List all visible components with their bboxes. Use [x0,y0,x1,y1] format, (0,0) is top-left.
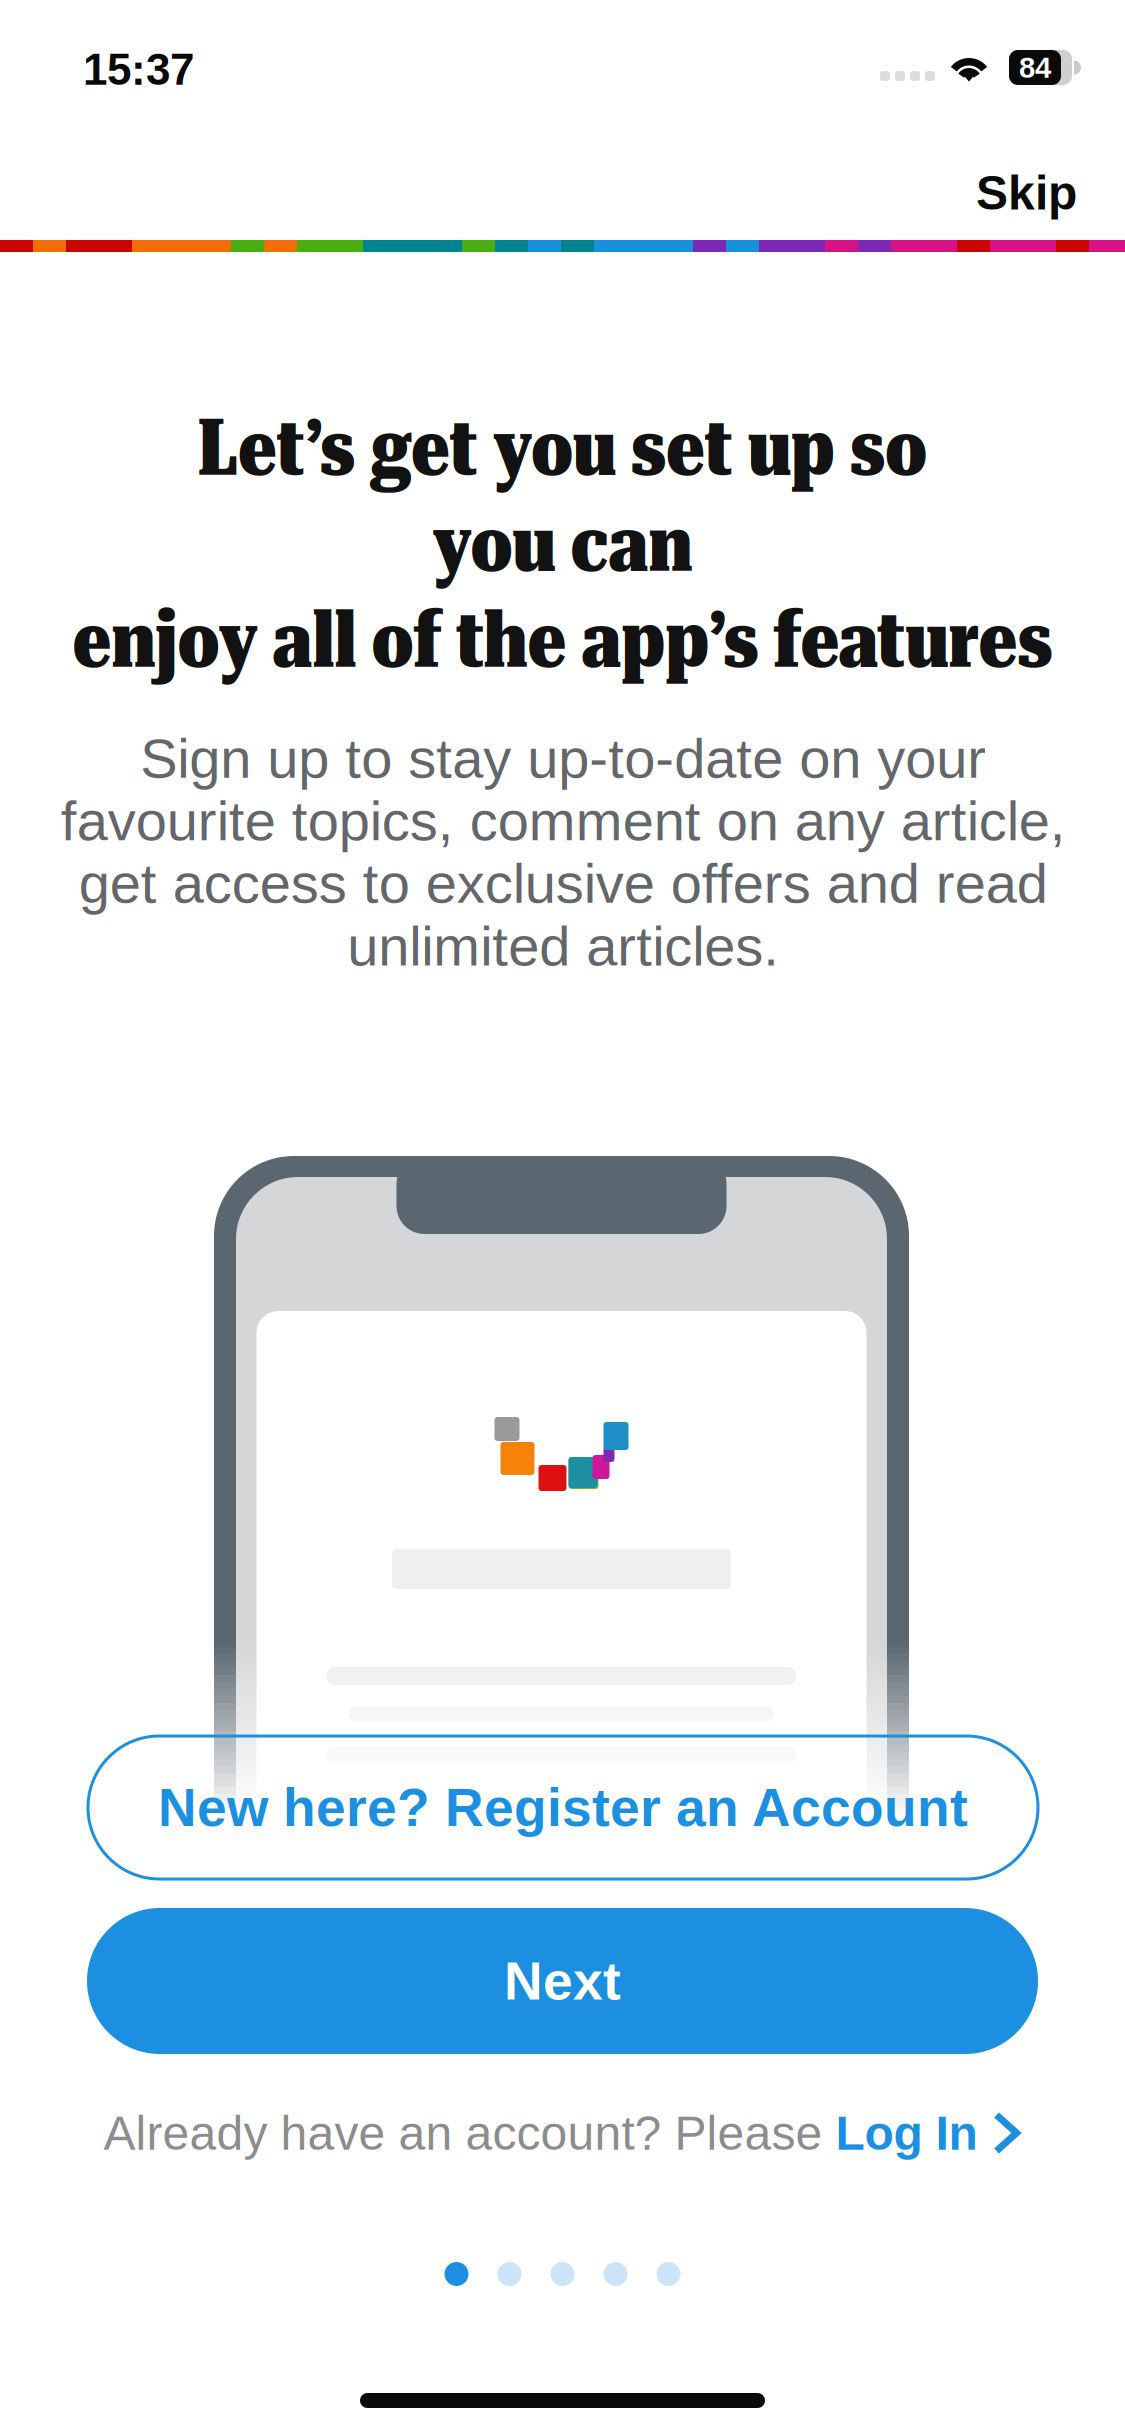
button[interactable]: Skip [950,142,1103,244]
staticText: Sign up to stay up-to-date on your favou… [60,727,1065,977]
staticText: 15:37 [83,45,194,94]
staticText: Skip [976,166,1077,220]
button[interactable]: Next [87,1908,1038,2054]
staticText: enjoy all of the app’s features [72,594,1052,686]
staticText: Next [504,1951,621,2011]
staticText: Log In [835,2106,977,2160]
staticText: you can [432,498,692,590]
staticText: Let’s get you set up so [198,402,927,494]
staticText: 84 [1019,51,1051,84]
staticText: New here? Register an Account [158,1778,968,1837]
button[interactable]: New here? Register an Account [88,1736,1038,1879]
staticText: Already have an account? Please [103,2106,835,2160]
button[interactable]: Already have an account? Please [103,2090,1021,2176]
